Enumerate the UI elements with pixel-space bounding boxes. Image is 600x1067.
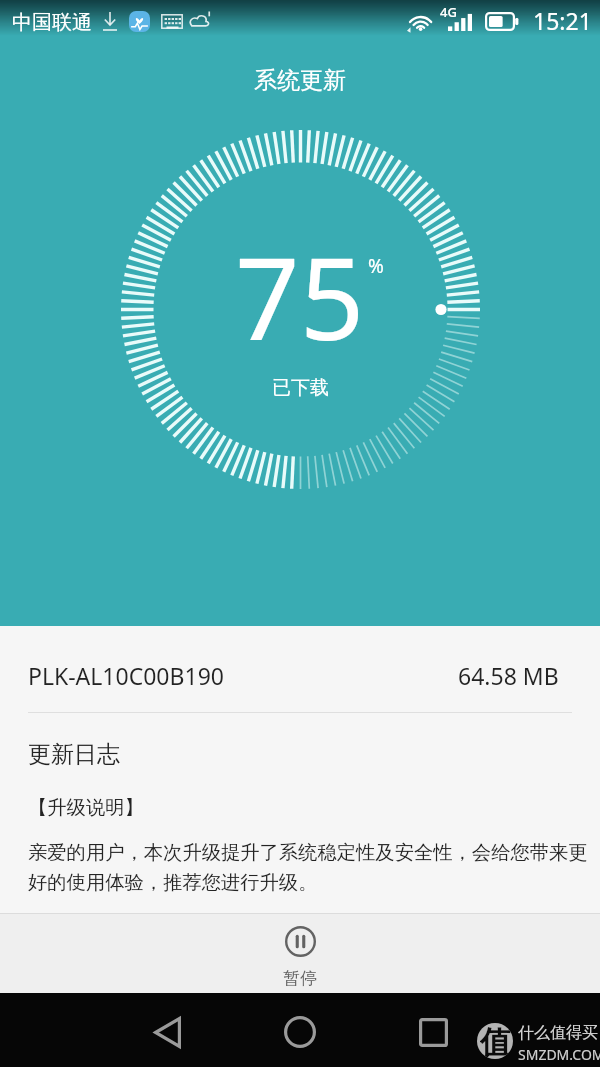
- button[interactable]: Recent apps: [400, 999, 466, 1065]
- staticText: 75: [235, 219, 365, 373]
- staticText: %: [368, 253, 384, 279]
- staticText: 亲爱的用户，本次升级提升了系统稳定性及安全性，会给您带来更好的使用体验，推荐您进…: [28, 840, 590, 895]
- button[interactable]: Back: [134, 999, 200, 1065]
- staticText: 值: [480, 1023, 511, 1059]
- staticText: SMZDM.COM: [518, 1045, 600, 1064]
- staticText: 【升级说明】: [28, 795, 144, 819]
- staticText: 已下载: [272, 376, 329, 400]
- staticText: 系统更新: [254, 66, 346, 95]
- staticText: 什么值得买: [518, 1023, 598, 1043]
- button[interactable]: PLK-AL10C00B190: [0, 626, 600, 712]
- staticText: 中国联通: [12, 10, 92, 35]
- staticText: 4G: [440, 3, 457, 21]
- staticText: 15:21: [533, 5, 592, 36]
- button[interactable]: 暂停: [0, 914, 600, 993]
- button[interactable]: Home: [267, 999, 333, 1065]
- staticText: PLK-AL10C00B190: [28, 660, 224, 691]
- staticText: 更新日志: [28, 740, 120, 769]
- staticText: 暂停: [283, 968, 317, 989]
- staticText: 64.58 MB: [458, 660, 559, 691]
